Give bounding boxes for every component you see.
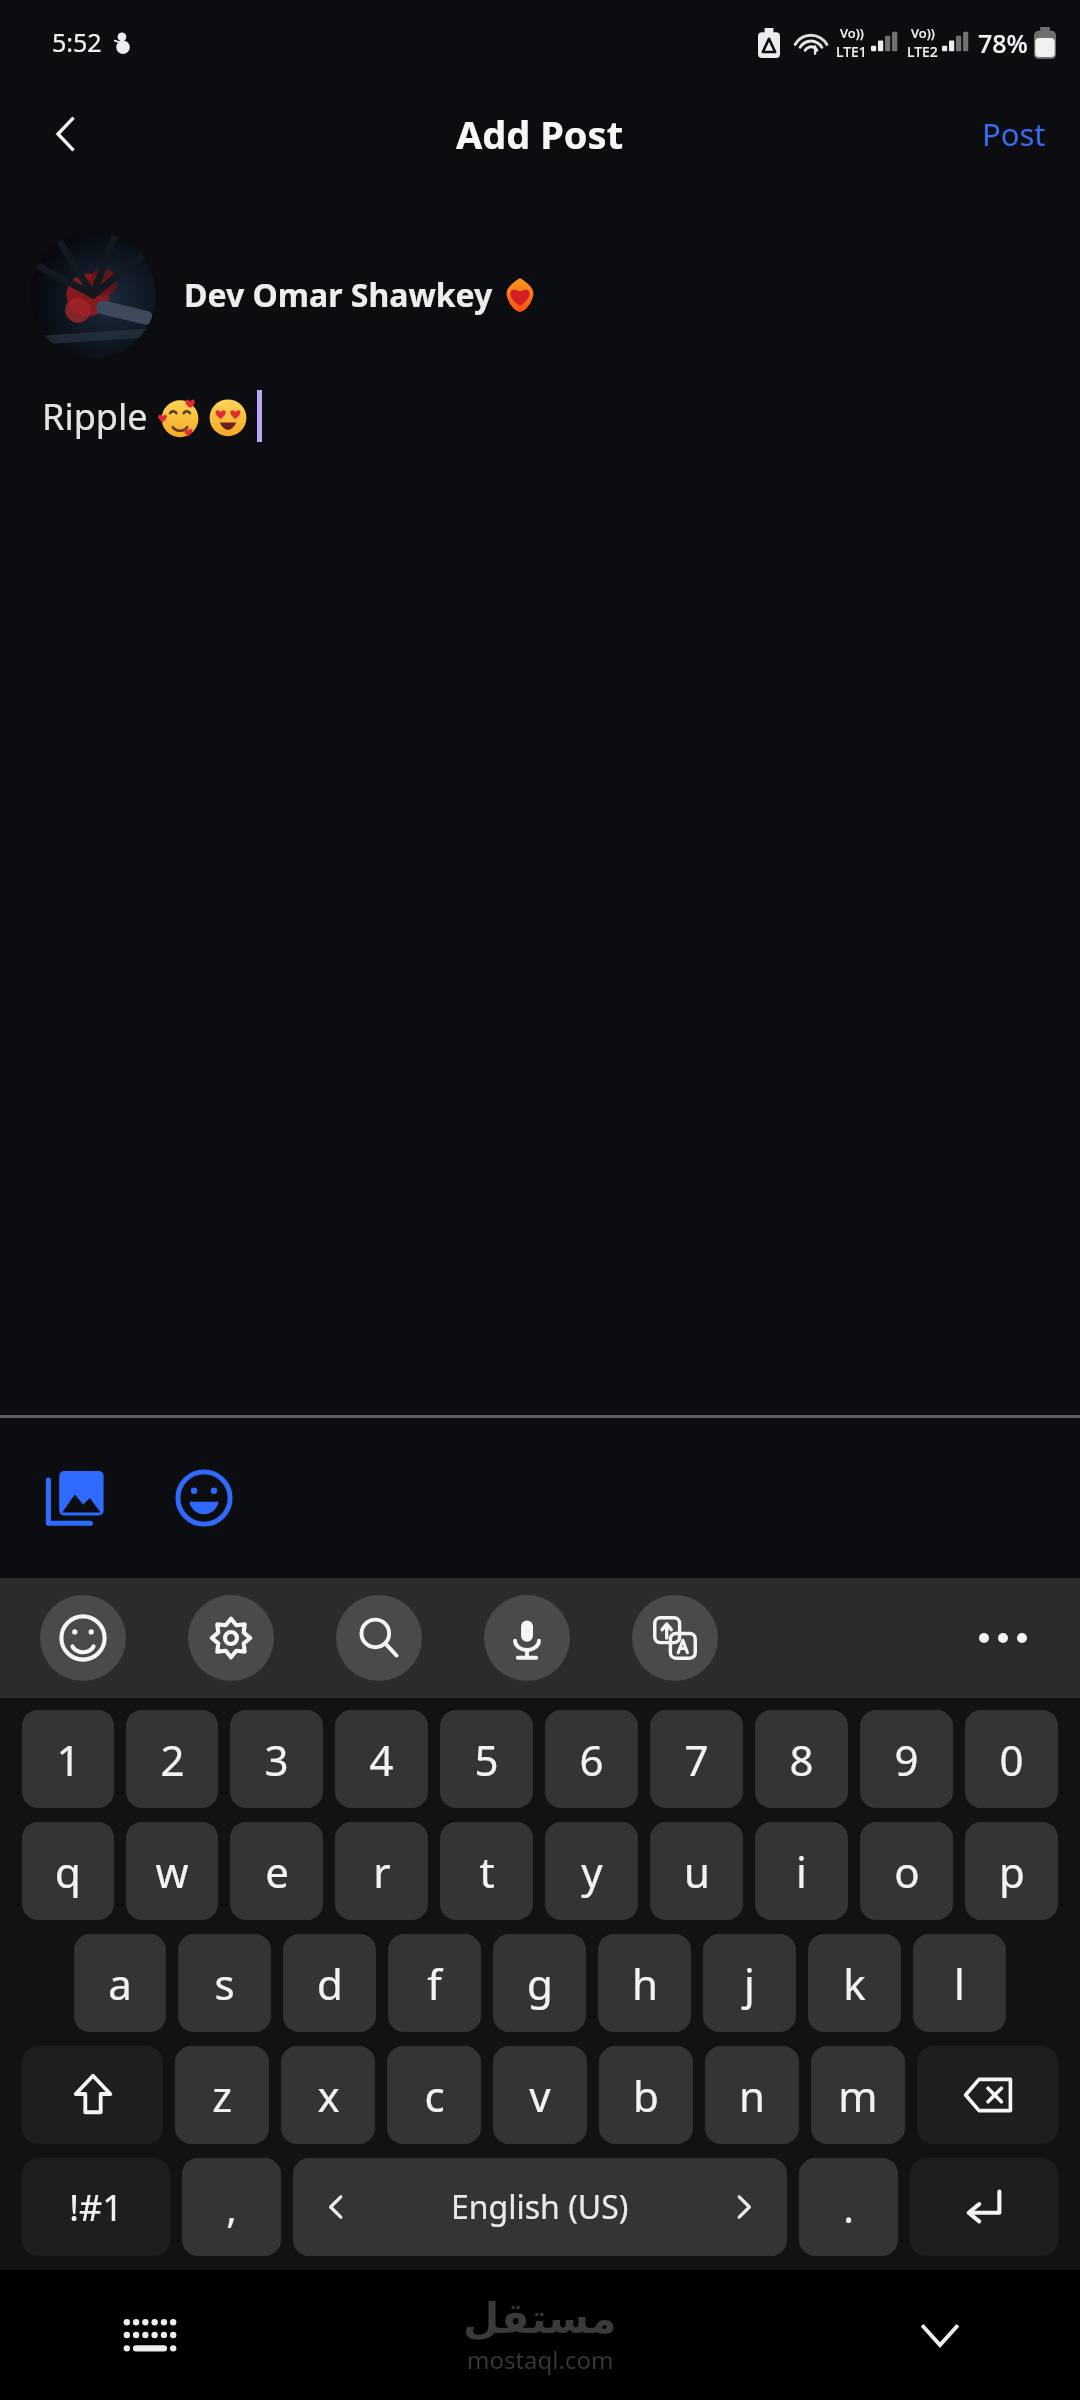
- button[interactable]: 5: [440, 1710, 533, 1808]
- staticText: مستقل: [463, 2294, 617, 2343]
- button[interactable]: x: [281, 2046, 375, 2144]
- button[interactable]: !#1: [22, 2158, 170, 2256]
- staticText: s: [214, 1955, 235, 2012]
- staticText: q: [55, 1843, 81, 1900]
- staticText: 1: [56, 1731, 81, 1788]
- button[interactable]: p: [965, 1822, 1058, 1920]
- button[interactable]: v: [493, 2046, 587, 2144]
- button[interactable]: Shift: [22, 2046, 163, 2144]
- staticText: 5: [474, 1731, 499, 1788]
- button[interactable]: Backspace: [917, 2046, 1058, 2144]
- button[interactable]: t: [440, 1822, 533, 1920]
- staticText: Post: [982, 113, 1046, 155]
- staticText: Ripple: [42, 392, 157, 441]
- button[interactable]: English (US): [293, 2158, 787, 2256]
- button[interactable]: 0: [965, 1710, 1058, 1808]
- button[interactable]: 4: [335, 1710, 428, 1808]
- button[interactable]: u: [650, 1822, 743, 1920]
- button[interactable]: f: [388, 1934, 481, 2032]
- staticText: l: [954, 1955, 965, 2012]
- button[interactable]: r: [335, 1822, 428, 1920]
- button[interactable]: q: [22, 1822, 114, 1920]
- staticText: LTE1: [836, 42, 867, 61]
- button[interactable]: Voice input: [484, 1595, 570, 1681]
- button[interactable]: s: [178, 1934, 271, 2032]
- button[interactable]: n: [705, 2046, 799, 2144]
- button[interactable]: g: [493, 1934, 586, 2032]
- button[interactable]: Emoji: [40, 1595, 126, 1681]
- button[interactable]: d: [283, 1934, 376, 2032]
- button[interactable]: l: [913, 1934, 1006, 2032]
- staticText: d: [317, 1955, 343, 2012]
- staticText: k: [843, 1955, 866, 2012]
- button[interactable]: .: [799, 2158, 898, 2256]
- staticText: 7: [684, 1731, 709, 1788]
- staticText: 6: [579, 1731, 604, 1788]
- button[interactable]: More options: [960, 1595, 1046, 1681]
- button[interactable]: Back: [28, 96, 104, 172]
- staticText: f: [427, 1955, 442, 2012]
- staticText: x: [317, 2067, 340, 2124]
- staticText: e: [265, 1843, 289, 1900]
- staticText: b: [633, 2067, 659, 2124]
- staticText: w: [155, 1843, 189, 1900]
- button[interactable]: Settings: [188, 1595, 274, 1681]
- staticText: t: [479, 1843, 495, 1900]
- staticText: !#1: [69, 2183, 123, 2232]
- staticText: ,: [226, 2180, 237, 2234]
- button[interactable]: i: [755, 1822, 848, 1920]
- staticText: 2: [160, 1731, 185, 1788]
- button[interactable]: ,: [182, 2158, 281, 2256]
- staticText: v: [529, 2067, 551, 2124]
- staticText: c: [424, 2067, 445, 2124]
- button[interactable]: y: [545, 1822, 638, 1920]
- staticText: m: [838, 2067, 878, 2124]
- button[interactable]: c: [387, 2046, 481, 2144]
- staticText: 3: [264, 1731, 289, 1788]
- staticText: mostaql.com: [467, 2343, 614, 2376]
- button[interactable]: Search: [336, 1595, 422, 1681]
- staticText: r: [373, 1843, 391, 1900]
- button[interactable]: Post: [974, 105, 1054, 163]
- button[interactable]: 8: [755, 1710, 848, 1808]
- button[interactable]: Switch keyboard: [110, 2295, 190, 2375]
- staticText: Vo)): [840, 24, 864, 42]
- staticText: Add Post: [456, 108, 624, 160]
- staticText: Vo)): [911, 24, 935, 42]
- button[interactable]: Translate: [632, 1595, 718, 1681]
- staticText: 9: [894, 1731, 919, 1788]
- staticText: Dev Omar Shawkey: [184, 273, 493, 317]
- staticText: a: [108, 1955, 132, 2012]
- button[interactable]: 7: [650, 1710, 743, 1808]
- staticText: z: [212, 2067, 232, 2124]
- staticText: 8: [789, 1731, 814, 1788]
- staticText: h: [632, 1955, 658, 2012]
- button[interactable]: j: [703, 1934, 796, 2032]
- button[interactable]: 6: [545, 1710, 638, 1808]
- button[interactable]: h: [598, 1934, 691, 2032]
- staticText: y: [581, 1843, 603, 1900]
- button[interactable]: w: [126, 1822, 218, 1920]
- button[interactable]: k: [808, 1934, 901, 2032]
- button[interactable]: e: [230, 1822, 323, 1920]
- button[interactable]: Hide keyboard: [900, 2295, 980, 2375]
- button[interactable]: 1: [22, 1710, 114, 1808]
- button[interactable]: Add emoji: [158, 1452, 250, 1544]
- staticText: g: [527, 1955, 553, 2012]
- button[interactable]: o: [860, 1822, 953, 1920]
- button[interactable]: m: [811, 2046, 905, 2144]
- staticText: o: [894, 1843, 920, 1900]
- button[interactable]: 3: [230, 1710, 323, 1808]
- button[interactable]: b: [599, 2046, 693, 2144]
- staticText: 5:52: [52, 25, 102, 59]
- staticText: 0: [999, 1731, 1024, 1788]
- button[interactable]: 9: [860, 1710, 953, 1808]
- staticText: 4: [369, 1731, 394, 1788]
- button[interactable]: 2: [126, 1710, 218, 1808]
- button[interactable]: z: [175, 2046, 269, 2144]
- button[interactable]: Add photo: [30, 1452, 122, 1544]
- button[interactable]: Enter: [910, 2158, 1058, 2256]
- button[interactable]: Profile picture: [30, 232, 156, 358]
- button[interactable]: a: [74, 1934, 166, 2032]
- staticText: p: [999, 1843, 1025, 1900]
